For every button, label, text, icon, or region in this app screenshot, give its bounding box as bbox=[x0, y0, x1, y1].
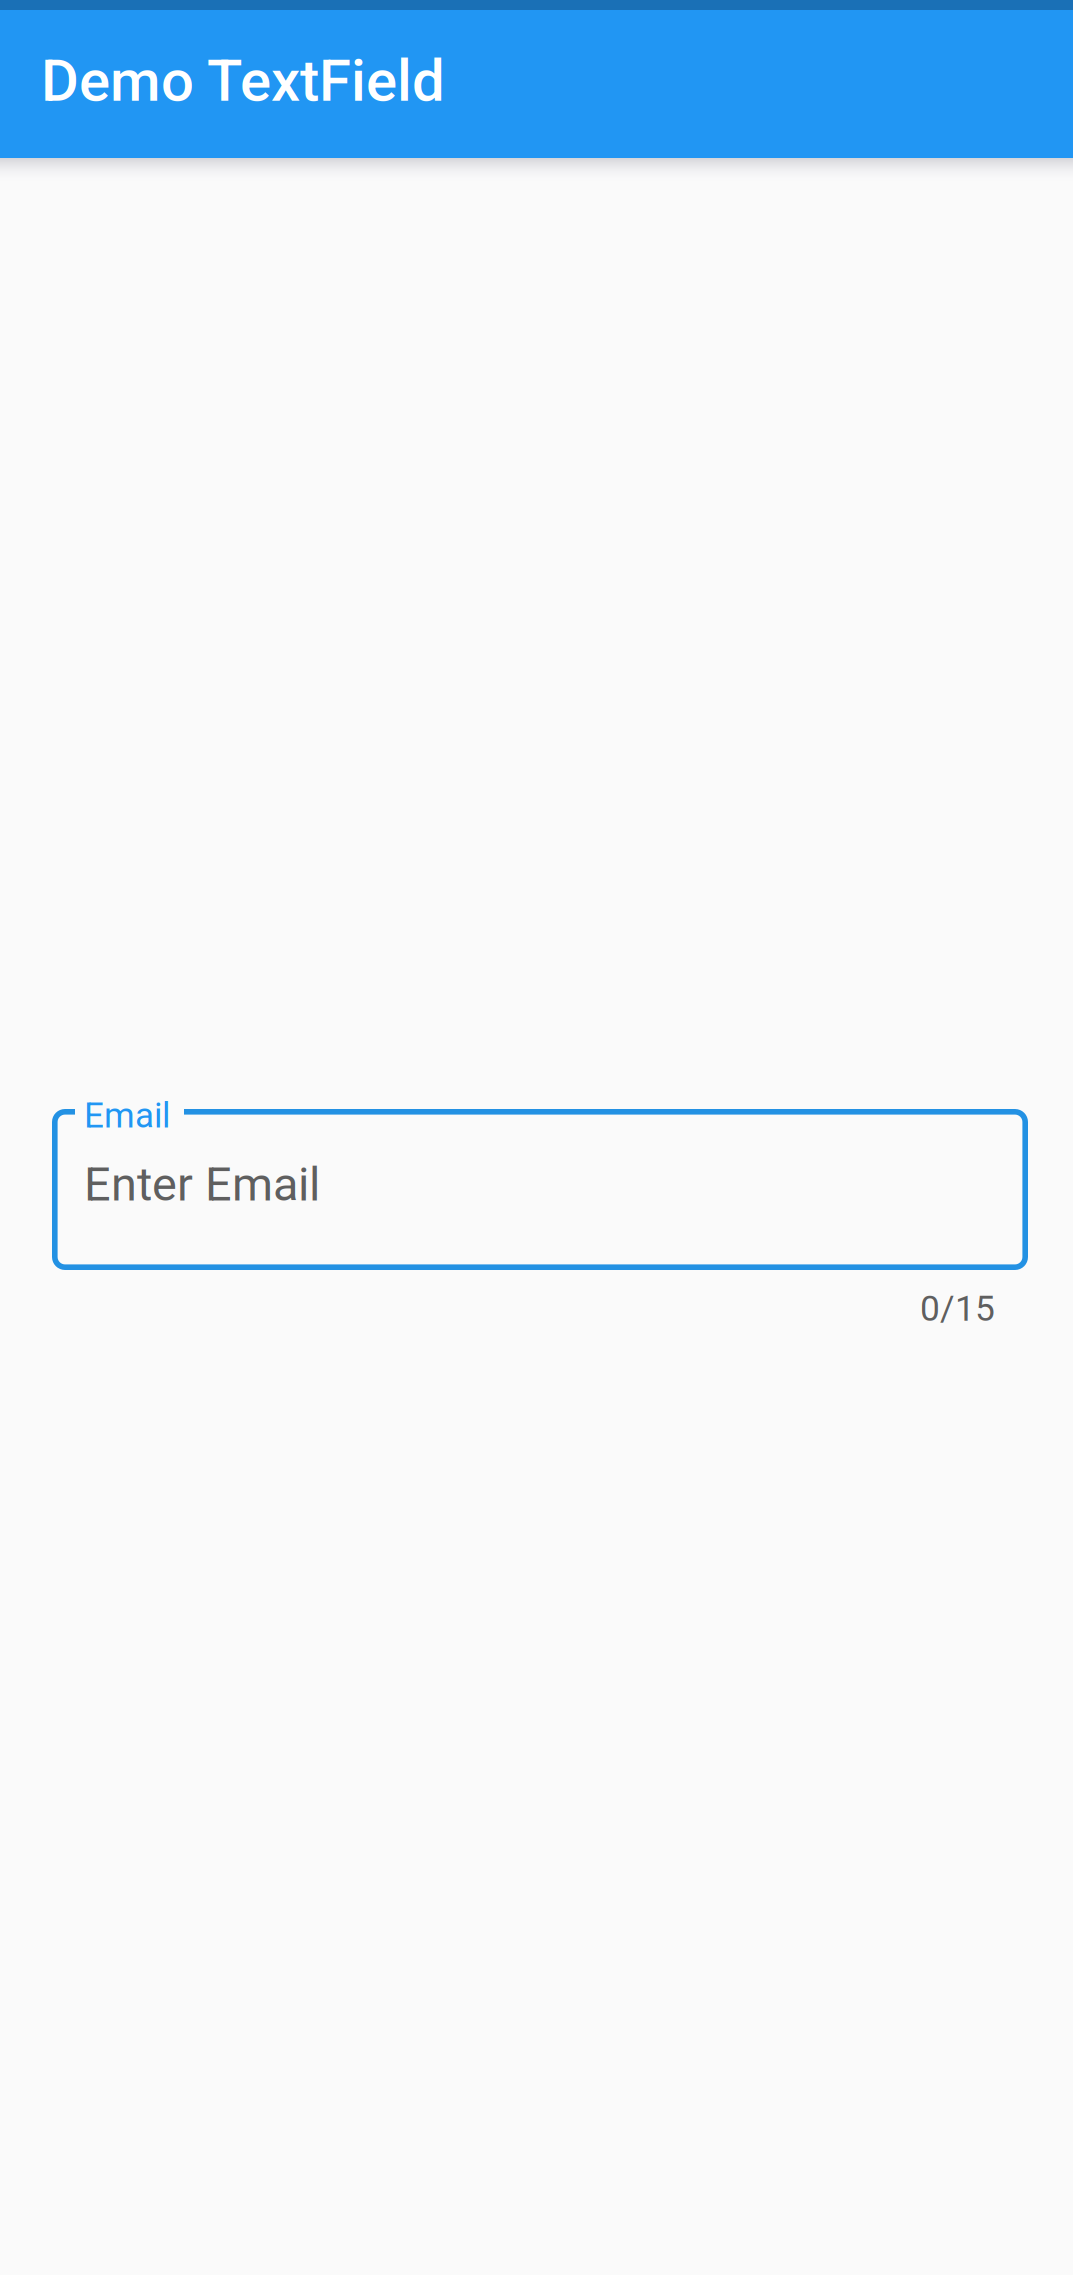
staticText: Enter Email bbox=[84, 1157, 320, 1212]
staticText: Demo TextField bbox=[41, 47, 445, 115]
staticText: Email bbox=[84, 1095, 170, 1136]
button[interactable]: Email bbox=[52, 1109, 1028, 1270]
staticText: 0/15 bbox=[920, 1288, 995, 1329]
